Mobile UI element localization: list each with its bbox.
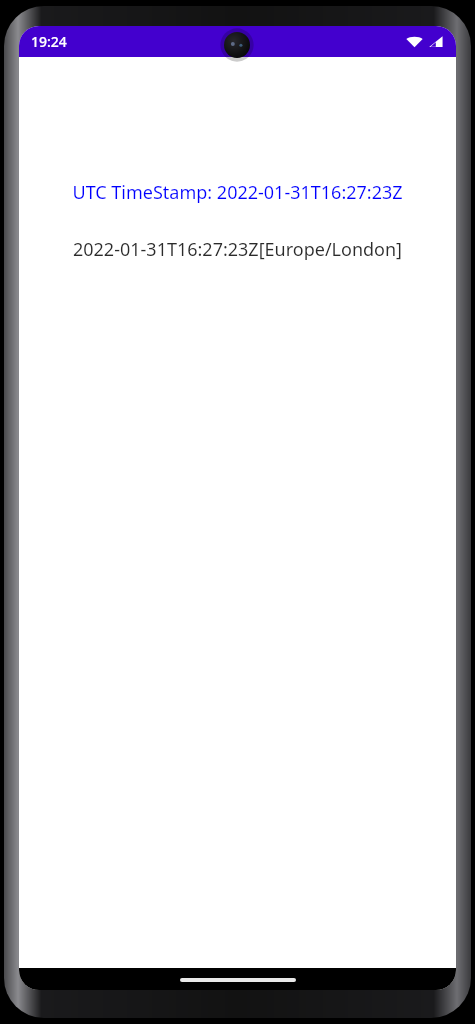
staticText: 19:24 bbox=[31, 32, 67, 51]
other: Cellular signal bbox=[428, 35, 443, 48]
other: Wi-Fi signal bbox=[406, 35, 423, 48]
button[interactable]: UTC TimeStamp: 2022-01-31T16:27:23Z bbox=[19, 180, 456, 205]
button[interactable]: 2022-01-31T16:27:23Z[Europe/London] bbox=[19, 237, 456, 262]
button[interactable]: Home gesture bar bbox=[180, 978, 296, 982]
